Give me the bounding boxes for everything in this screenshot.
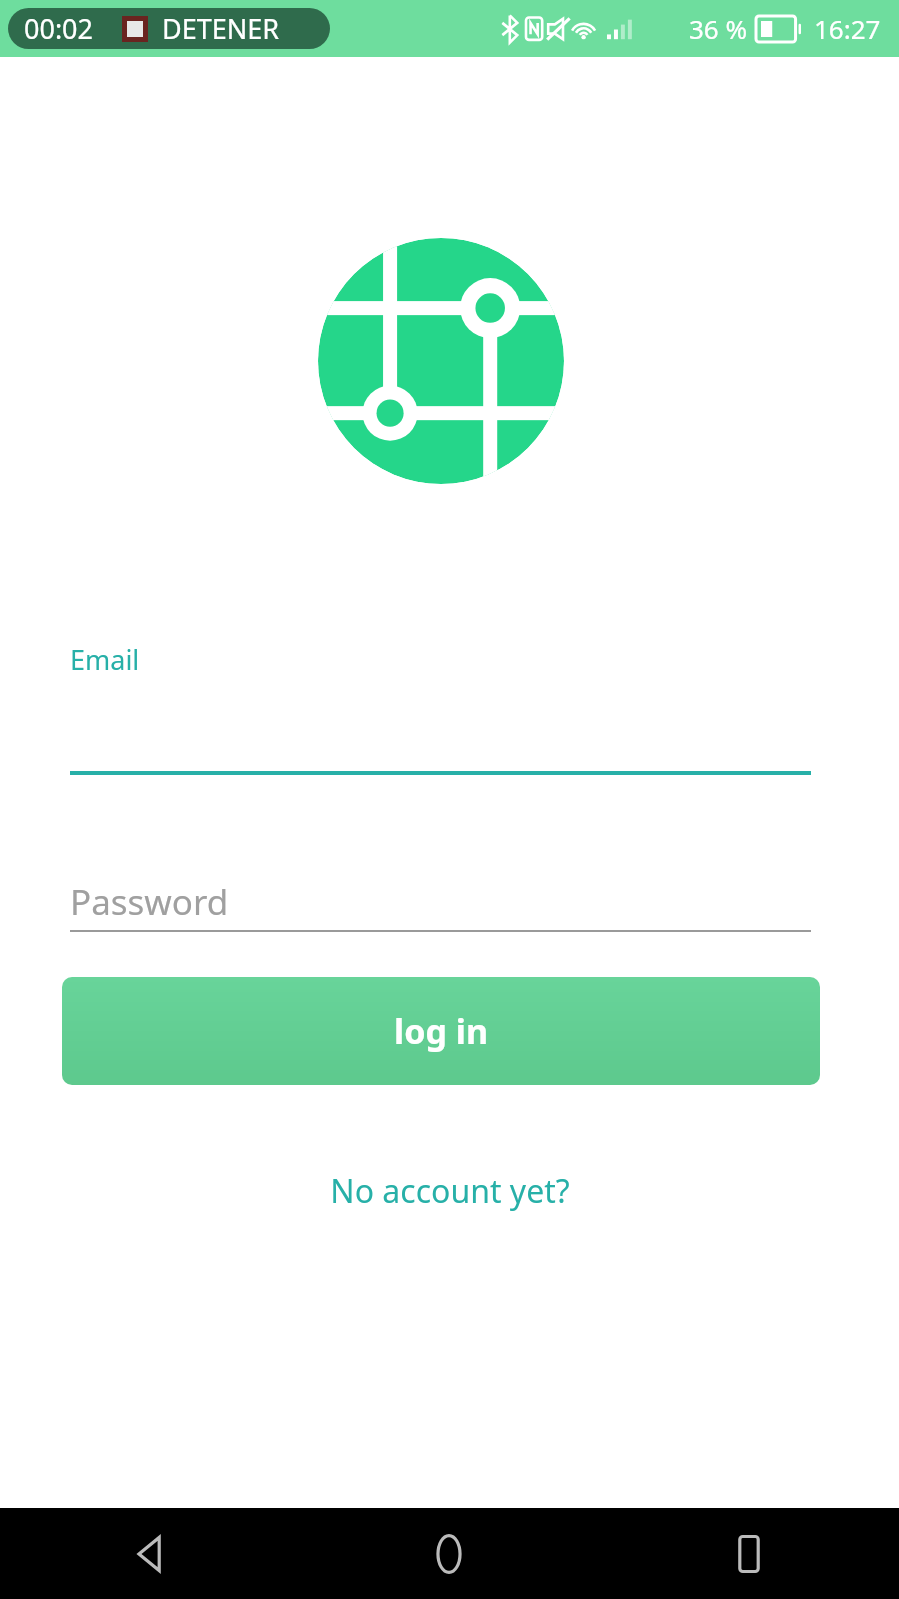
- button[interactable]: No account yet?: [0, 1157, 899, 1225]
- staticText: log in: [394, 1008, 488, 1054]
- button[interactable]: Home: [299, 1508, 599, 1599]
- staticText: 00:02: [24, 10, 94, 47]
- staticText: Email: [70, 641, 140, 678]
- button[interactable]: 00:02: [8, 8, 330, 49]
- staticText: 36 %: [689, 11, 748, 46]
- button[interactable]: [70, 677, 811, 773]
- button[interactable]: log in: [62, 977, 820, 1085]
- button[interactable]: Back: [0, 1508, 299, 1599]
- staticText: No account yet?: [330, 1169, 570, 1213]
- staticText: 16:27: [814, 11, 881, 46]
- staticText: DETENER: [162, 10, 280, 47]
- staticText: Orange: [36, 12, 125, 46]
- button[interactable]: Recent apps: [599, 1508, 899, 1599]
- staticText: Password: [70, 878, 229, 926]
- button[interactable]: [70, 869, 811, 929]
